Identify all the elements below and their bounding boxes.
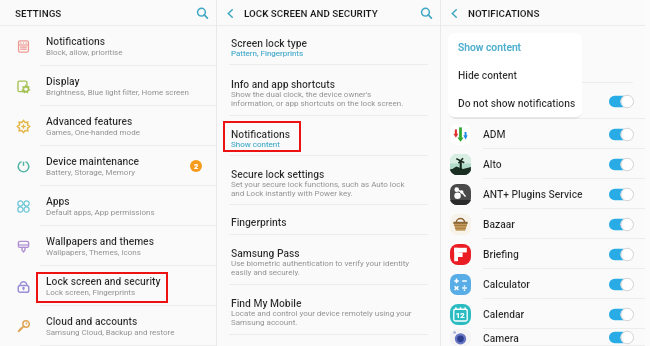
button[interactable]: Secure lock settings [217, 156, 440, 205]
button[interactable]: Find My Mobile [217, 285, 440, 335]
staticText: Alto [483, 158, 609, 170]
button[interactable]: Bazaar [441, 209, 645, 239]
staticText: Hide content [458, 69, 517, 81]
staticText: 2 [194, 162, 199, 171]
staticText: Cloud and accounts [46, 315, 138, 327]
staticText: Briefing [483, 248, 609, 260]
staticText: Lock screen, Fingerprints [46, 288, 136, 297]
button[interactable]: Toggle notifications [609, 308, 634, 321]
button[interactable]: Wallpapers and themes [0, 226, 216, 266]
button[interactable]: Lock screen and security [0, 266, 216, 306]
staticText: Find My Mobile [231, 297, 302, 309]
button[interactable]: Back [217, 0, 244, 26]
staticText: 12 [456, 311, 465, 320]
staticText: Show content [458, 41, 522, 53]
staticText: Camera [483, 332, 609, 344]
staticText: Do not show notifications [458, 97, 576, 109]
button[interactable] [441, 26, 645, 83]
staticText: Apps [46, 195, 70, 207]
button[interactable]: Advanced features [0, 106, 216, 146]
staticText: Show the dual clock, the device owner's … [231, 90, 404, 108]
staticText: Brightness, Blue light filter, Home scre… [46, 88, 189, 97]
staticText: Advanced features [46, 115, 133, 127]
staticText: Games, One-handed mode [46, 128, 140, 137]
button[interactable]: Fingerprints [217, 205, 440, 235]
button[interactable]: Screen lock type [217, 26, 440, 65]
staticText: Samsung Pass [231, 247, 300, 259]
staticText: Notifications [46, 35, 106, 47]
staticText: LOCK SCREEN AND SECURITY [244, 8, 378, 19]
button[interactable]: Info and app shortcuts [217, 65, 440, 116]
button[interactable]: Calculator [441, 269, 645, 299]
staticText: ANT+ Plugins Service [483, 188, 609, 200]
button[interactable]: Toggle notifications [609, 248, 634, 261]
staticText: Show content [231, 140, 280, 149]
staticText: Battery, Storage, Memory [46, 168, 135, 177]
button[interactable]: Back [441, 0, 468, 26]
button[interactable]: Hide content [448, 61, 582, 89]
staticText: Bazaar [483, 218, 609, 230]
button[interactable]: Alto [441, 149, 645, 179]
staticText: Lock screen and security [46, 275, 161, 287]
staticText: Calendar [483, 308, 609, 320]
button[interactable]: Toggle notifications [609, 158, 634, 171]
button[interactable]: ADM [441, 119, 645, 149]
button[interactable]: Display [0, 66, 216, 106]
button[interactable]: Toggle notifications [609, 128, 634, 141]
button[interactable]: Apps [0, 186, 216, 226]
button[interactable]: Cloud and accounts [0, 306, 216, 346]
button[interactable]: Camera [441, 329, 645, 346]
staticText: Set your secure lock functions, such as … [231, 180, 405, 198]
button[interactable]: Search [188, 0, 216, 26]
staticText: Calculator [483, 278, 609, 290]
staticText: Info and app shortcuts [231, 78, 336, 90]
button[interactable]: 12 [441, 299, 645, 329]
staticText: Device maintenance [46, 155, 140, 167]
staticText: Display [46, 75, 80, 87]
button[interactable]: Search [412, 0, 440, 26]
staticText: Wallpapers, Themes, Icons [46, 248, 141, 257]
button[interactable]: Toggle notifications [609, 218, 634, 231]
staticText: Samsung Cloud, Backup and restore [46, 328, 175, 337]
staticText: Default apps, App permissions [46, 208, 155, 217]
staticText: ADM [483, 128, 609, 140]
button[interactable]: Notifications [217, 116, 440, 156]
button[interactable]: ANT+ Plugins Service [441, 179, 645, 209]
button[interactable]: Show content [448, 33, 582, 61]
button[interactable]: Toggle notifications [609, 95, 634, 108]
staticText: Notifications [231, 128, 291, 140]
button[interactable]: Toggle notifications [441, 83, 645, 119]
staticText: Use biometric authentication to verify y… [231, 259, 410, 277]
staticText: Locate and control your device remotely … [231, 309, 412, 327]
button[interactable]: Toggle notifications [609, 278, 634, 291]
button[interactable]: Notifications [0, 26, 216, 66]
button[interactable]: Toggle notifications [609, 331, 634, 344]
staticText: NOTIFICATIONS [468, 8, 540, 19]
staticText: Secure lock settings [231, 168, 325, 180]
staticText: Pattern, Fingerprints [231, 49, 304, 58]
staticText: Fingerprints [231, 216, 287, 228]
staticText: SETTINGS [15, 8, 62, 19]
button[interactable]: Device maintenance [0, 146, 216, 186]
staticText: Screen lock type [231, 37, 308, 49]
button[interactable]: Do not show notifications [448, 89, 582, 117]
staticText: Block, allow, prioritise [46, 48, 123, 57]
button[interactable]: Briefing [441, 239, 645, 269]
button[interactable]: Samsung Pass [217, 235, 440, 285]
button[interactable]: Toggle notifications [609, 188, 634, 201]
staticText: Wallpapers and themes [46, 235, 154, 247]
